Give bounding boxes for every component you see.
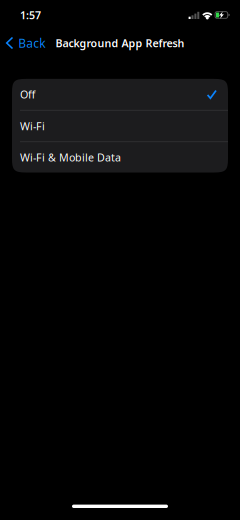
button[interactable]: Wi-Fi & Mobile Data: [12, 142, 228, 172]
staticText: Off: [20, 87, 35, 101]
button[interactable]: Off: [12, 79, 228, 110]
button[interactable]: Back: [0, 30, 53, 56]
staticText: Wi-Fi: [20, 119, 45, 133]
staticText: Background App Refresh: [55, 36, 184, 50]
staticText: Back: [18, 35, 45, 51]
button[interactable]: Wi-Fi: [12, 110, 228, 142]
staticText: Wi-Fi & Mobile Data: [20, 150, 121, 164]
staticText: 1:57: [20, 8, 41, 22]
